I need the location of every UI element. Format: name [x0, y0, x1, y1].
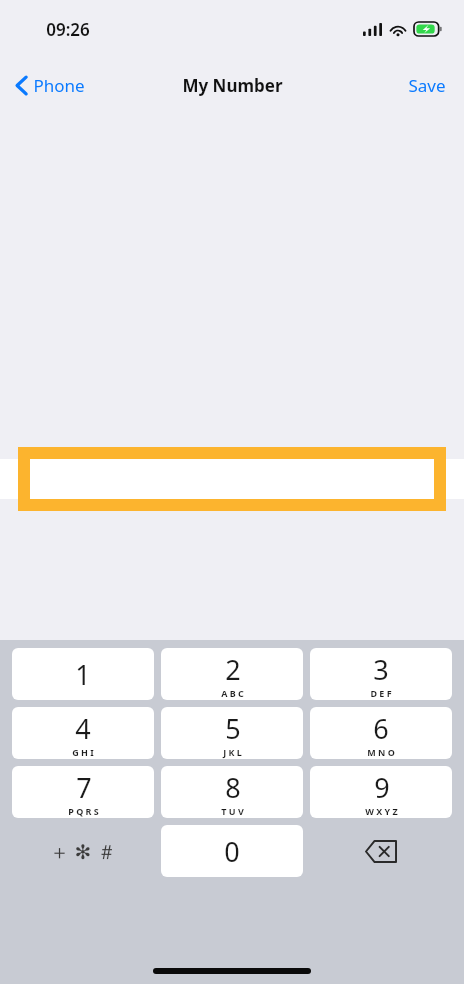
staticText: G H I	[72, 746, 94, 758]
staticText: Phone	[33, 74, 85, 97]
button[interactable]: 7	[12, 766, 154, 818]
staticText: A B C	[221, 687, 244, 699]
staticText: 1	[75, 656, 91, 693]
staticText: 9	[374, 769, 390, 806]
button[interactable]: 5	[161, 707, 303, 759]
staticText: 4	[75, 710, 91, 747]
staticText: 2	[225, 651, 241, 688]
staticText: 7	[76, 769, 92, 806]
button[interactable]: 0	[161, 825, 303, 877]
staticText: T U V	[221, 805, 244, 817]
staticText: ＋ ✻ ＃	[49, 838, 117, 865]
button[interactable]: Delete	[310, 825, 452, 877]
button[interactable]: Save	[390, 68, 464, 103]
button[interactable]: 4	[12, 707, 154, 759]
staticText: P Q R S	[68, 805, 99, 817]
button[interactable]: Phone	[0, 68, 95, 103]
staticText: 09:26	[46, 18, 90, 41]
button[interactable]: 9	[310, 766, 452, 818]
staticText: M N O	[367, 746, 395, 758]
staticText: 0	[224, 833, 240, 870]
button[interactable]: ＋ ✻ ＃	[12, 825, 154, 877]
staticText: 3	[373, 651, 389, 688]
staticText: 8	[225, 769, 241, 806]
button[interactable]	[0, 447, 464, 511]
button[interactable]: 1	[12, 648, 154, 700]
button[interactable]: 2	[161, 648, 303, 700]
staticText: W X Y Z	[365, 805, 398, 817]
button[interactable]: 3	[310, 648, 452, 700]
staticText: 6	[373, 710, 389, 747]
staticText: Save	[408, 74, 446, 97]
staticText: J K L	[223, 746, 242, 758]
staticText: My Number	[182, 74, 283, 97]
staticText: D E F	[370, 687, 392, 699]
button[interactable]: 8	[161, 766, 303, 818]
button[interactable]: 6	[310, 707, 452, 759]
staticText: 5	[225, 710, 241, 747]
